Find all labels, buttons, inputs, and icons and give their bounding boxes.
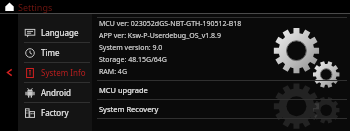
staticText: APP ver: Ksw-P-Userdebug_OS_v1.8.9 [99,31,221,41]
staticText: System Recovery [99,104,159,114]
button[interactable]: Android [18,83,92,102]
staticText: MCU upgrade [99,85,148,95]
staticText: Time [41,47,60,58]
staticText: RAM: 4G [99,67,127,77]
staticText: System Info [41,67,86,78]
button[interactable]: Home [4,1,15,12]
button[interactable]: Time [18,43,92,62]
staticText: Android [41,87,71,98]
button[interactable]: Factory [18,103,92,122]
button[interactable]: System Info [18,63,92,82]
staticText: System version: 9.0 [99,43,163,53]
staticText: Settings [18,1,53,13]
staticText: MCU ver: 023052dGS-NBT-GTH-190512-B18 [99,19,242,29]
button[interactable]: Language [18,23,92,42]
staticText: Storage: 48.15G/64G [99,55,167,65]
button[interactable]: System Recovery [92,100,350,118]
button[interactable]: MCU upgrade [92,81,350,99]
button[interactable]: Back [0,14,18,131]
staticText: Language [41,27,79,38]
staticText: Factory [41,107,69,118]
